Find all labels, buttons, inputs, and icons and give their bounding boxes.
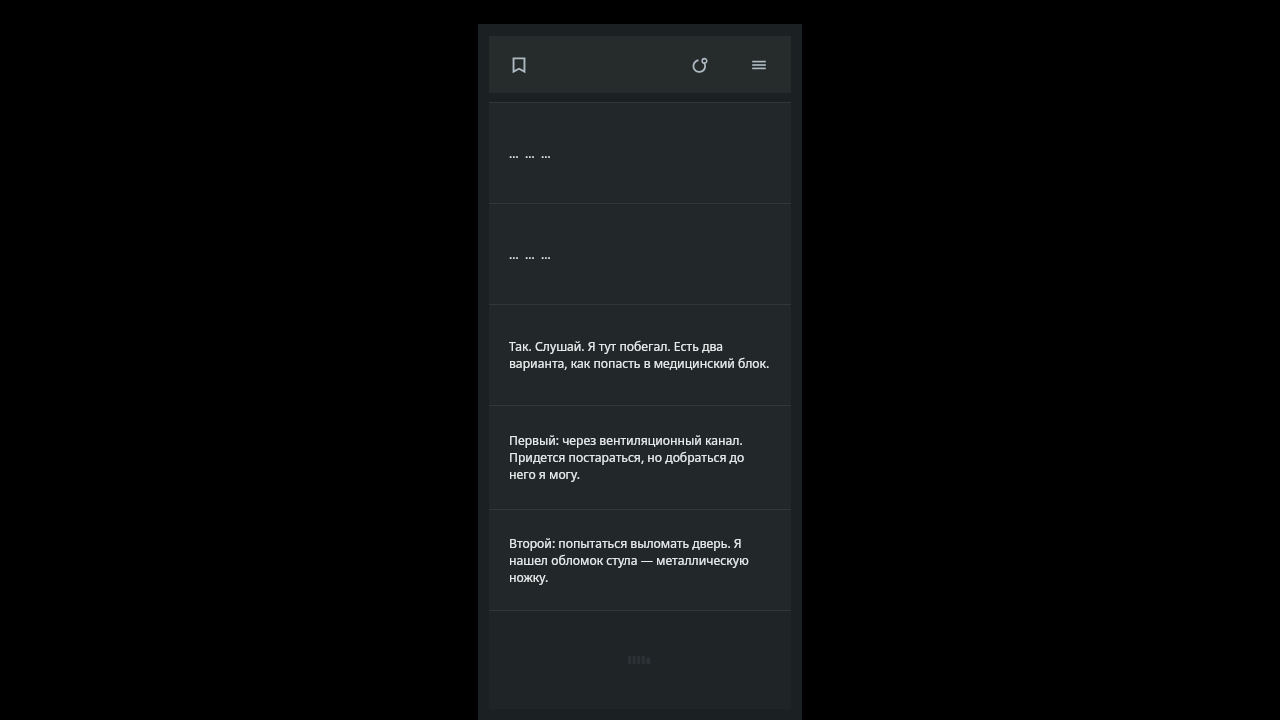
staticText: … … …: [509, 145, 551, 162]
staticText: Так. Слушай. Я тут побегал. Есть два вар…: [509, 338, 771, 372]
staticText: Второй: попытаться выломать дверь. Я наш…: [509, 535, 771, 586]
button[interactable]: Menu: [746, 52, 772, 78]
button[interactable]: … … …: [489, 103, 791, 203]
button[interactable]: Bookmarks: [506, 52, 532, 78]
staticText: … … …: [509, 246, 551, 263]
button[interactable]: … … …: [489, 204, 791, 304]
staticText: Первый: через вентиляционный канал. Прид…: [509, 432, 771, 483]
button[interactable]: Так. Слушай. Я тут побегал. Есть два вар…: [489, 305, 791, 405]
button[interactable]: Первый: через вентиляционный канал. Прид…: [489, 406, 791, 509]
button[interactable]: Второй: попытаться выломать дверь. Я наш…: [489, 510, 791, 610]
button[interactable]: Progress: [687, 52, 713, 78]
